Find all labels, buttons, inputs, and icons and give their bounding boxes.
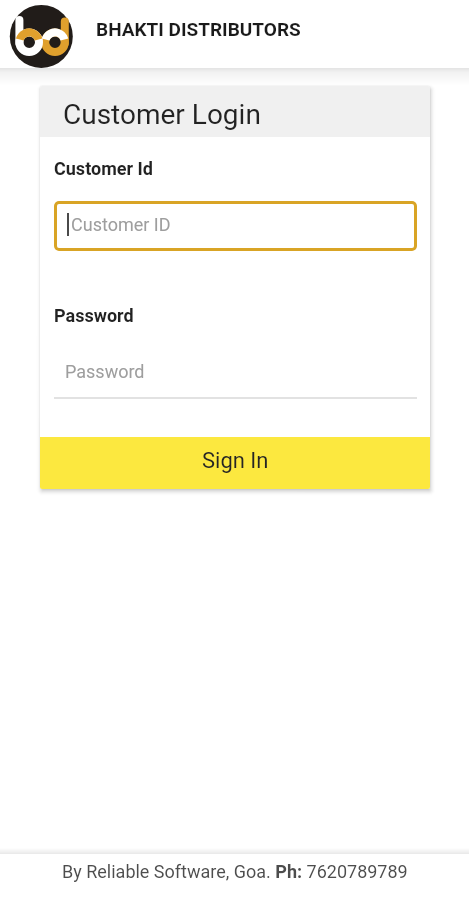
button[interactable]: Customer ID — [54, 201, 417, 251]
staticText: Customer ID — [71, 214, 171, 235]
button[interactable]: Password — [54, 326, 417, 399]
staticText: Customer Login — [63, 98, 261, 131]
staticText: Password — [54, 305, 134, 326]
staticText: BHAKTI DISTRIBUTORS — [96, 18, 301, 40]
staticText: Sign In — [202, 448, 269, 474]
staticText: Customer Id — [54, 158, 153, 179]
button[interactable]: Sign In — [40, 437, 430, 489]
staticText: By Reliable Software, Goa. Ph: 762078978… — [62, 861, 408, 882]
staticText: Password — [65, 361, 145, 382]
